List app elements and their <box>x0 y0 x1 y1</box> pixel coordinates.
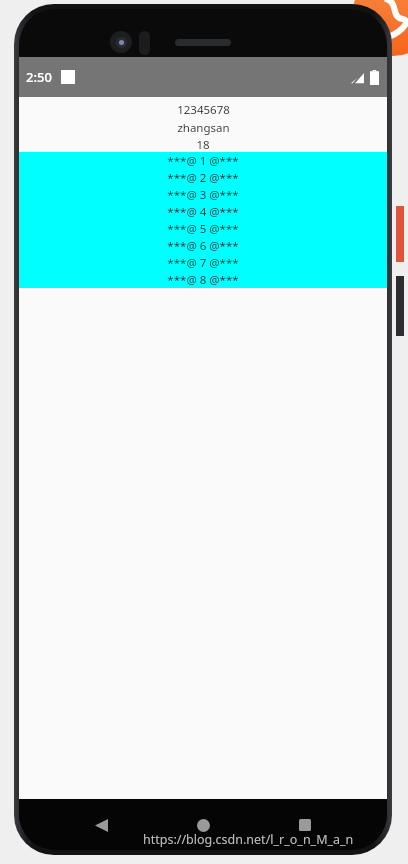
staticText: 12345678 <box>177 102 230 118</box>
button[interactable]: ***@ 4 @*** <box>19 203 387 220</box>
staticText: 2:50 <box>26 68 52 86</box>
staticText: ***@ 1 @*** <box>167 153 239 169</box>
staticText: ***@ 3 @*** <box>167 187 239 203</box>
staticText: ***@ 4 @*** <box>167 204 239 220</box>
button[interactable]: ***@ 8 @*** <box>19 271 387 288</box>
staticText: ***@ 2 @*** <box>167 170 239 186</box>
staticText: ***@ 7 @*** <box>167 255 239 271</box>
staticText: https://blog.csdn.net/l_r_o_n_M_a_n <box>143 831 354 848</box>
button[interactable]: ***@ 2 @*** <box>19 169 387 186</box>
button[interactable]: ***@ 5 @*** <box>19 220 387 237</box>
button[interactable]: Back <box>83 807 119 843</box>
button[interactable]: Recent apps <box>287 807 323 843</box>
button[interactable]: ***@ 7 @*** <box>19 254 387 271</box>
staticText: 18 <box>196 137 210 152</box>
button[interactable]: ***@ 6 @*** <box>19 237 387 254</box>
staticText: zhangsan <box>177 120 230 136</box>
button[interactable]: Home <box>185 807 221 843</box>
button[interactable]: ***@ 3 @*** <box>19 186 387 203</box>
button[interactable]: ***@ 1 @*** <box>19 152 387 169</box>
staticText: ***@ 6 @*** <box>167 238 239 254</box>
staticText: ***@ 8 @*** <box>167 272 239 288</box>
staticText: ***@ 5 @*** <box>167 221 239 237</box>
